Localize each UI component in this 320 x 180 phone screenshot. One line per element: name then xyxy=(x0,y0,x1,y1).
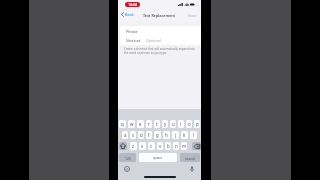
button[interactable]: w xyxy=(128,120,135,128)
staticText: v xyxy=(159,143,162,149)
button[interactable]: Numbers xyxy=(119,153,136,162)
staticText: search xyxy=(185,156,196,160)
staticText: f xyxy=(148,132,150,138)
button[interactable]: x xyxy=(139,142,146,150)
staticText: s xyxy=(132,132,135,138)
button[interactable]: Shortcut xyxy=(126,36,198,45)
staticText: t xyxy=(156,121,158,127)
button[interactable]: q xyxy=(119,120,126,128)
button[interactable]: k xyxy=(181,131,188,139)
staticText: p xyxy=(196,121,199,127)
button[interactable]: z xyxy=(130,142,137,150)
staticText: h xyxy=(165,132,168,138)
staticText: g xyxy=(156,132,159,138)
button[interactable]: n xyxy=(173,142,179,150)
button[interactable]: f xyxy=(146,131,152,139)
staticText: 123 xyxy=(125,156,131,160)
staticText: j xyxy=(175,132,177,138)
staticText: Phrase xyxy=(126,29,138,34)
button[interactable]: Emoji xyxy=(124,166,130,172)
staticText: u xyxy=(172,121,175,127)
staticText: k xyxy=(183,132,186,138)
button[interactable]: b xyxy=(165,142,171,150)
button[interactable]: v xyxy=(157,142,163,150)
staticText: Shortcut xyxy=(126,38,141,43)
button[interactable]: space xyxy=(139,153,177,162)
staticText: Back xyxy=(125,12,134,17)
staticText: b xyxy=(167,143,170,149)
button[interactable]: p xyxy=(194,120,200,128)
button[interactable]: g xyxy=(154,131,161,139)
staticText: d xyxy=(140,132,143,138)
button[interactable]: e xyxy=(137,120,144,128)
staticText: z xyxy=(132,143,135,149)
button[interactable]: i xyxy=(178,120,184,128)
button[interactable]: Delete xyxy=(192,142,201,150)
staticText: Text Replacement xyxy=(143,13,176,18)
button[interactable]: j xyxy=(172,131,179,139)
button[interactable]: u xyxy=(170,120,176,128)
staticText: n xyxy=(175,143,178,149)
button[interactable]: m xyxy=(181,142,187,150)
button[interactable]: t xyxy=(154,120,160,128)
button[interactable]: l xyxy=(190,131,197,139)
staticText: space xyxy=(153,155,163,160)
button[interactable]: a xyxy=(122,131,128,139)
staticText: a xyxy=(124,132,127,138)
button[interactable]: y xyxy=(162,120,168,128)
staticText: c xyxy=(150,143,153,149)
staticText: Create a shortcut that will automaticall… xyxy=(124,47,197,55)
button[interactable]: c xyxy=(148,142,155,150)
staticText: i xyxy=(180,121,182,127)
staticText: y xyxy=(164,121,167,127)
button[interactable]: h xyxy=(163,131,170,139)
staticText: r xyxy=(148,121,150,127)
staticText: e xyxy=(139,121,142,127)
button[interactable]: Shift xyxy=(119,142,127,150)
staticText: w xyxy=(130,121,134,127)
staticText: q xyxy=(121,121,124,127)
button[interactable]: Phrase xyxy=(126,26,198,36)
button[interactable]: r xyxy=(146,120,152,128)
button[interactable]: s xyxy=(130,131,136,139)
button[interactable]: o xyxy=(186,120,192,128)
button[interactable]: Back xyxy=(121,12,134,17)
button[interactable]: Save xyxy=(188,13,197,18)
button[interactable]: Search xyxy=(180,153,200,162)
staticText: 14:04 xyxy=(128,2,137,7)
staticText: m xyxy=(182,143,187,149)
staticText: o xyxy=(188,121,191,127)
staticText: l xyxy=(193,132,195,138)
button[interactable]: d xyxy=(138,131,144,139)
staticText: x xyxy=(141,143,144,149)
staticText: Optional xyxy=(146,38,161,43)
button[interactable]: Dictate xyxy=(190,166,194,172)
